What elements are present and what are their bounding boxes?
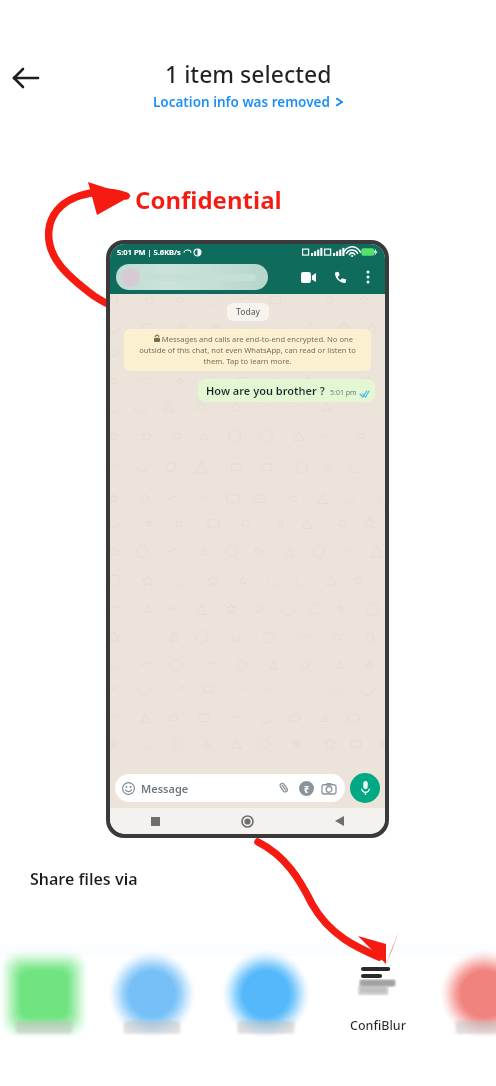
button[interactable]: Today [236,306,260,318]
staticText: Share files via [30,868,138,890]
staticText: Location info was removed [153,93,330,111]
button[interactable]: Back [4,56,48,100]
staticText: ConfiBlur [350,1017,406,1034]
button[interactable]: App [116,958,188,1030]
button[interactable]: App [8,958,80,1030]
staticText: How are you brother ? [206,383,325,398]
button[interactable]: Home [201,808,293,834]
staticText: Message [141,781,189,796]
button[interactable]: Voice call [327,264,353,290]
staticText: Confidential [135,183,282,216]
button[interactable]: Messages and calls are end-to-end encryp… [124,329,371,371]
button[interactable]: Video call [295,264,321,290]
button[interactable]: Attach [275,779,293,797]
button[interactable]: App [230,958,302,1030]
staticText: 5:01 pm [330,388,357,398]
staticText: Messages and calls are end-to-end encryp… [132,334,363,366]
button[interactable]: Camera [320,779,338,797]
button[interactable]: Recents [110,808,201,834]
button[interactable]: Message [115,774,345,802]
button[interactable]: Back [293,808,385,834]
staticText: ₹ [304,783,310,795]
button[interactable]: How are you brother ? [198,379,375,402]
staticText: Today [236,306,260,318]
button[interactable]: ConfiBlur [334,952,422,1034]
button[interactable]: More options [357,266,379,288]
staticText: 5:01 PM | 5.6KB/s [117,247,181,257]
button[interactable]: Contact (blurred) [116,264,268,290]
button[interactable]: Payment [299,781,314,796]
button[interactable]: Voice message [350,773,380,803]
button[interactable]: Location info was removed [151,93,346,111]
staticText: 1 item selected [165,58,332,89]
button[interactable]: App [448,958,496,1030]
